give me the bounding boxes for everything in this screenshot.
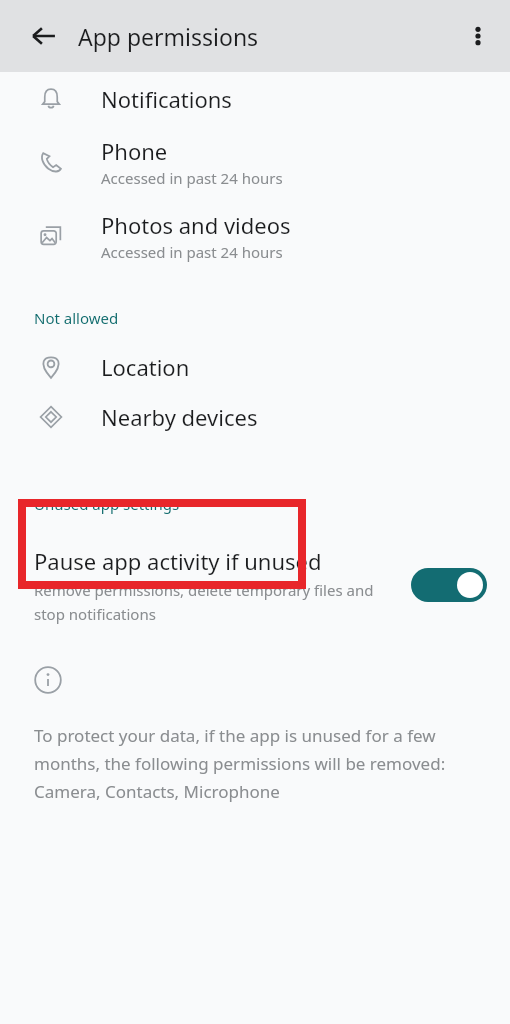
staticText: Notifications (101, 84, 232, 114)
staticText: Accessed in past 24 hours (101, 242, 283, 262)
button[interactable]: Pause app activity if unused (0, 546, 510, 624)
staticText: Nearby devices (101, 402, 258, 432)
staticText: Not allowed (34, 308, 119, 328)
button[interactable]: Back (20, 12, 68, 60)
staticText: Unused app settings (34, 494, 180, 514)
staticText: Pause app activity if unused (34, 546, 322, 576)
staticText: Accessed in past 24 hours (101, 168, 283, 188)
staticText: Location (101, 352, 190, 382)
staticText: Photos and videos (101, 210, 291, 240)
button[interactable]: More options (454, 12, 502, 60)
button[interactable]: Notifications (0, 84, 510, 114)
button[interactable]: Nearby devices (0, 402, 510, 432)
staticText: App permissions (78, 21, 259, 52)
button[interactable]: Photos and videos (0, 210, 510, 262)
staticText: Remove permissions, delete temporary fil… (34, 580, 393, 624)
staticText: Phone (101, 136, 168, 166)
button[interactable]: Phone (0, 136, 510, 188)
staticText: To protect your data, if the app is unus… (34, 724, 480, 803)
button[interactable]: Location (0, 352, 510, 382)
button[interactable]: Pause app activity if unused toggle (411, 568, 487, 602)
